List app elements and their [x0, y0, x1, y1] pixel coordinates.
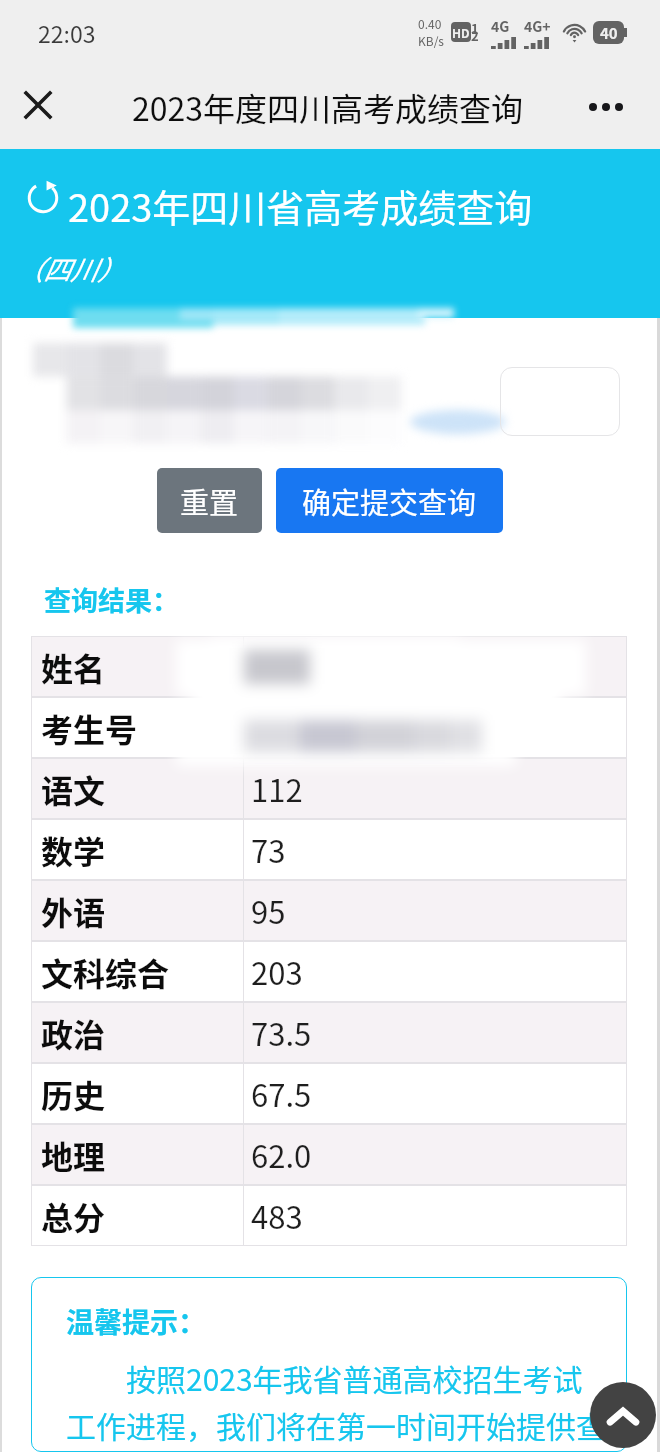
button[interactable]: 确定提交查询 — [276, 468, 503, 533]
button[interactable]: Close — [12, 80, 66, 134]
staticText: 总分 — [41, 1193, 106, 1239]
button[interactable]: 考生号 — [31, 697, 627, 758]
button[interactable]: 地理 — [31, 1124, 627, 1185]
staticText: 4G+ — [524, 16, 551, 36]
staticText: 温馨提示： — [66, 1301, 207, 1342]
staticText: 姓名 — [41, 644, 106, 690]
button[interactable]: 外语 — [31, 880, 627, 941]
staticText: 67.5 — [251, 1071, 312, 1116]
staticText: 203 — [251, 949, 303, 994]
button[interactable]: 文科综合 — [31, 941, 627, 1002]
staticText: 0.40 — [418, 15, 442, 32]
staticText: 73 — [251, 827, 286, 872]
button[interactable]: 重置 — [157, 468, 262, 533]
staticText: 外语 — [41, 888, 106, 934]
staticText: 40 — [600, 22, 618, 44]
button[interactable]: 历史 — [31, 1063, 627, 1124]
button[interactable]: 姓名 — [31, 636, 627, 697]
staticText: 文科综合 — [41, 949, 170, 995]
staticText: 62.0 — [251, 1132, 312, 1177]
staticText: HD — [452, 24, 470, 41]
button[interactable]: 数学 — [31, 819, 627, 880]
staticText: 查询结果： — [44, 580, 179, 619]
staticText: 确定提交查询 — [302, 480, 477, 522]
button[interactable]: Back to top — [590, 1382, 656, 1448]
staticText: 4G — [491, 16, 510, 36]
button[interactable]: 语文 — [31, 758, 627, 819]
staticText: 112 — [251, 766, 303, 811]
staticText: 数学 — [41, 827, 106, 873]
button[interactable]: 总分 — [31, 1185, 627, 1246]
staticText: 语文 — [41, 766, 106, 812]
staticText: （四川） — [16, 249, 124, 288]
staticText: 重置 — [180, 480, 239, 522]
staticText: 2023年度四川高考成绩查询 — [132, 84, 524, 130]
staticText: 2023年四川省高考成绩查询 — [68, 178, 533, 233]
staticText: 历史 — [41, 1071, 106, 1117]
button[interactable]: More options — [579, 80, 633, 134]
staticText: KB/s — [418, 32, 444, 49]
staticText: 2 — [471, 26, 479, 45]
staticText: 1 — [471, 19, 479, 38]
button[interactable]: 政治 — [31, 1002, 627, 1063]
staticText: 政治 — [41, 1010, 106, 1056]
staticText: 95 — [251, 888, 286, 933]
staticText: 考生号 — [41, 705, 138, 751]
staticText: 22:03 — [38, 16, 96, 49]
staticText: 地理 — [41, 1132, 106, 1178]
staticText: 73.5 — [251, 1010, 312, 1055]
staticText: 按照2023年我省普通高校招生考试工作进程，我们将在第一时间开始提供查询，考生须… — [66, 1356, 609, 1452]
staticText: 483 — [251, 1193, 303, 1238]
